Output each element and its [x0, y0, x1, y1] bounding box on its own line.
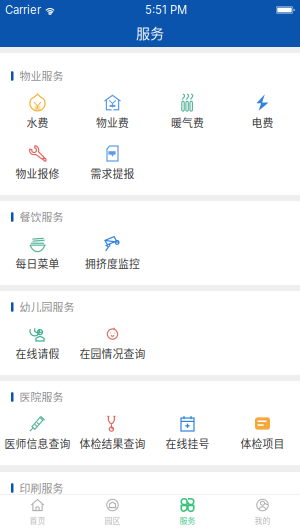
- button[interactable]: 拥挤度监控: [75, 234, 150, 269]
- button[interactable]: 医师信息查询: [0, 414, 75, 449]
- staticText: 在线请假: [15, 346, 59, 361]
- button[interactable]: 物业费: [75, 93, 150, 128]
- button[interactable]: 服务: [150, 494, 225, 530]
- button[interactable]: 体检结果查询: [75, 414, 150, 449]
- staticText: 在园情况查询: [79, 346, 145, 361]
- button[interactable]: 体检项目: [225, 414, 300, 449]
- staticText: 物业费: [96, 115, 129, 130]
- staticText: 物业服务: [19, 68, 63, 84]
- button[interactable]: 需求提报: [75, 144, 150, 179]
- staticText: 需求提报: [90, 166, 134, 181]
- button[interactable]: 水费: [0, 93, 75, 128]
- staticText: 医院服务: [19, 389, 63, 405]
- staticText: 拥挤度监控: [85, 256, 140, 271]
- staticText: 5:51 PM: [145, 3, 187, 17]
- staticText: 水费: [26, 115, 48, 130]
- staticText: 印刷服务: [19, 480, 63, 496]
- button[interactable]: 暖气费: [150, 93, 225, 128]
- staticText: 首页: [29, 515, 45, 526]
- staticText: 在线挂号: [165, 436, 209, 451]
- staticText: 体检项目: [240, 436, 284, 451]
- button[interactable]: 每日菜单: [0, 234, 75, 269]
- button[interactable]: 在园情况查询: [75, 324, 150, 359]
- button[interactable]: 首页: [0, 494, 75, 530]
- staticText: 我的: [254, 515, 270, 526]
- button[interactable]: 在线挂号: [150, 414, 225, 449]
- staticText: Carrier: [5, 3, 41, 17]
- button[interactable]: 物业报修: [0, 144, 75, 179]
- staticText: 服务: [136, 22, 164, 43]
- staticText: 幼儿园服务: [19, 299, 74, 315]
- staticText: 体检结果查询: [79, 436, 145, 451]
- button[interactable]: 电费: [225, 93, 300, 128]
- staticText: 电费: [251, 115, 273, 130]
- button[interactable]: 我的: [225, 494, 300, 530]
- staticText: 每日菜单: [15, 256, 59, 271]
- button[interactable]: 在线请假: [0, 324, 75, 359]
- button[interactable]: 园区: [75, 494, 150, 530]
- staticText: 物业报修: [15, 166, 59, 181]
- staticText: 暖气费: [171, 115, 204, 130]
- staticText: 服务: [179, 515, 195, 526]
- staticText: 医师信息查询: [4, 436, 70, 451]
- staticText: 餐饮服务: [19, 209, 63, 225]
- staticText: 园区: [104, 515, 120, 526]
